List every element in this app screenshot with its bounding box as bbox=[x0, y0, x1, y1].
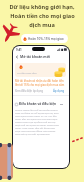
button[interactable]: Back bbox=[15, 55, 19, 59]
staticText: hành. Mức hoàn tiền tối đa không bbox=[15, 126, 55, 129]
staticText: Xem điều kiện áp dụng bbox=[15, 89, 44, 93]
staticText: hoàn tiền áp dụng cho các giao dịch bbox=[15, 117, 58, 120]
staticText: hoặc thẻ tín dụng do ngân hàng phát bbox=[15, 123, 59, 126]
button[interactable]: Hoàn 10%-15% mọi giao dịch bbox=[21, 34, 68, 43]
staticText: Ưu đãi hoàn tiền bbox=[17, 71, 37, 74]
staticText: vượt quá 500.000 đồng mỗi tháng. bbox=[15, 129, 56, 132]
staticText: thanh toán hợp lệ bằng thẻ ghi nợ bbox=[15, 120, 56, 123]
staticText: ứng dụng trước ngày 31/12. Ưu đãi bbox=[15, 114, 57, 117]
staticText: Dữ liệu không giới hạn, bbox=[9, 3, 75, 11]
staticText: Xem thể lệ chi tiết tại website. bbox=[15, 132, 50, 135]
button[interactable]: Điều khoản và điều kiện bbox=[15, 102, 57, 106]
staticText: Hoàn tiền cho mọi giao bbox=[10, 12, 75, 20]
staticText: lên tới 15% cho mọi giao dịch mua sắm bbox=[15, 83, 65, 87]
staticText: Hoàn 10%-15% mọi giao dịch bbox=[28, 37, 66, 41]
staticText: 9:41 bbox=[16, 48, 22, 52]
button[interactable]: Áp dụng bbox=[53, 89, 65, 93]
staticText: Khách hàng cần mở tài khoản thanh bbox=[15, 108, 58, 111]
staticText: toán và đăng ký sử dụng dịch vụ trên bbox=[15, 111, 59, 114]
staticText: Mở tài khoản và nhận ưu đãi hoàn tiền bbox=[15, 79, 64, 83]
staticText: dịch mua bbox=[29, 21, 55, 29]
staticText: Điều khoản và điều kiện bbox=[19, 102, 57, 106]
button[interactable]: Ưu đãi hoàn tiền bbox=[15, 63, 66, 77]
staticText: Mở tài khoản mới bbox=[20, 54, 50, 59]
